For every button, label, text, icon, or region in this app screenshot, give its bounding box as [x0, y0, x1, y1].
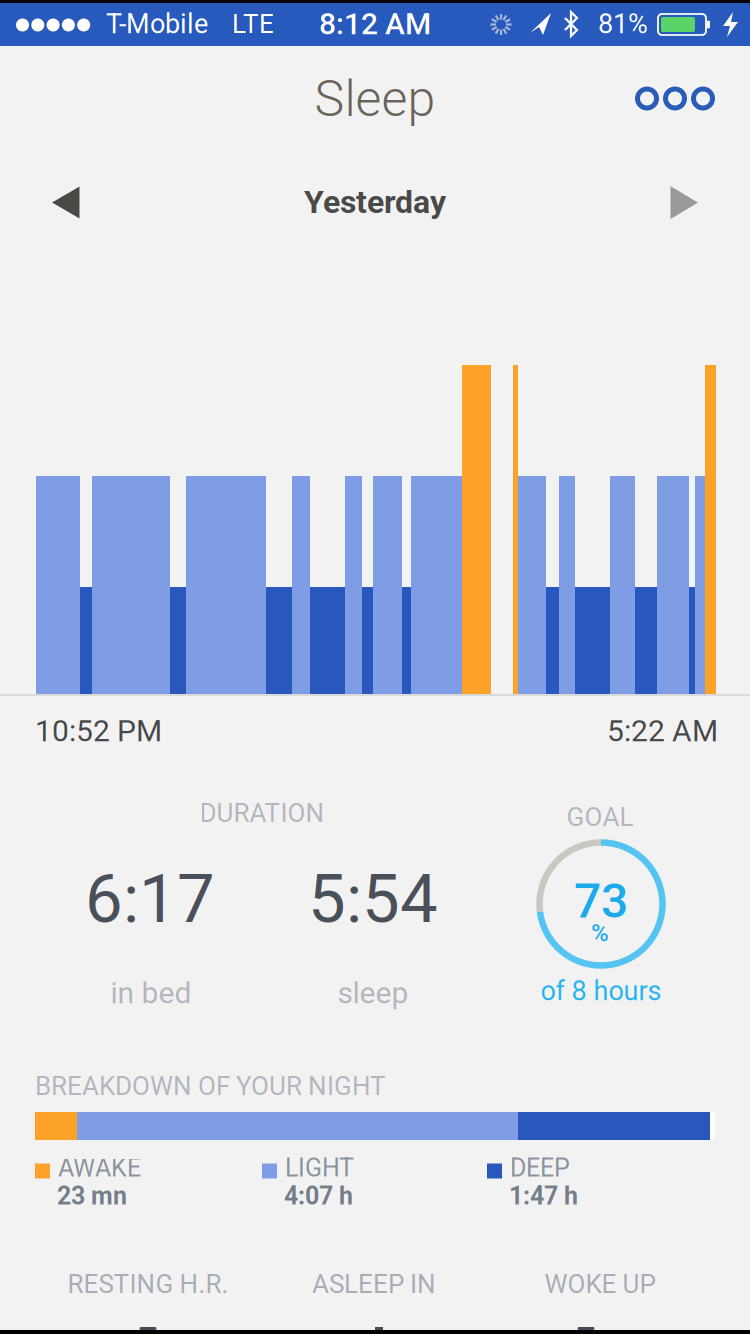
staticText: WOKE UP [544, 1269, 655, 1299]
staticText: LIGHT [285, 1153, 354, 1183]
staticText: RESTING H.R. [67, 1269, 228, 1299]
staticText: 10:52 PM [35, 713, 162, 749]
staticText: T-Mobile [106, 8, 208, 40]
button[interactable] [52, 186, 79, 218]
staticText: GOAL [566, 802, 633, 832]
staticText: Sleep [314, 70, 435, 128]
staticText: 81% [598, 8, 648, 40]
staticText: % [591, 919, 609, 947]
staticText: DURATION [199, 798, 324, 828]
staticText: sleep [337, 975, 408, 1011]
staticText: 1:47 h [509, 1181, 578, 1211]
button[interactable] [670, 186, 698, 219]
staticText: BREAKDOWN OF YOUR NIGHT [35, 1071, 386, 1101]
staticText: LTE [232, 9, 274, 39]
staticText: 5:54 [308, 860, 438, 938]
staticText: ASLEEP IN [312, 1269, 436, 1299]
staticText: 6:17 [85, 860, 215, 938]
button[interactable] [637, 89, 712, 108]
staticText: DEEP [510, 1153, 570, 1183]
staticText: AWAKE [58, 1153, 141, 1183]
staticText: 23 mn [57, 1181, 127, 1211]
staticText: in bed [110, 975, 191, 1011]
staticText: Yesterday [304, 183, 446, 221]
staticText: 8:12 AM [319, 6, 431, 42]
staticText: 4:07 h [284, 1181, 353, 1211]
staticText: of 8 hours [540, 975, 661, 1007]
staticText: 73 [574, 873, 628, 929]
staticText: 5:22 AM [607, 713, 718, 749]
